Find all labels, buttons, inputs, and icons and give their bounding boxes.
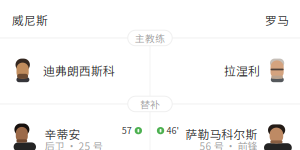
staticText: 替补: [140, 97, 160, 111]
staticText: 拉涅利: [224, 62, 260, 79]
staticText: 辛蒂安: [45, 125, 81, 142]
staticText: 后卫 · 25 号: [45, 138, 103, 150]
staticText: 56 号 · 前锋: [199, 138, 257, 150]
staticText: 57: [122, 123, 132, 136]
staticText: 主教练: [135, 31, 165, 45]
staticText: 萨勒马科尔斯: [185, 125, 257, 142]
button[interactable]: 威尼斯: [12, 10, 142, 30]
staticText: 迪弗朗西斯科: [43, 62, 115, 79]
staticText: 罗马: [265, 11, 289, 28]
staticText: 46': [167, 123, 180, 136]
button[interactable]: 罗马: [159, 10, 289, 30]
staticText: 威尼斯: [12, 11, 48, 28]
